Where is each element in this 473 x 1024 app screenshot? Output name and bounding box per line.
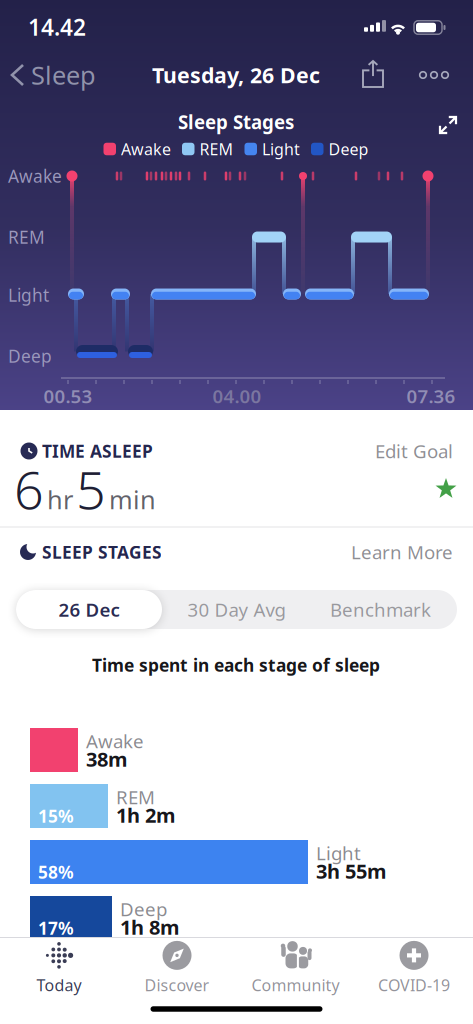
staticText: 30 Day Avg <box>187 597 285 622</box>
button[interactable]: Edit Goal <box>329 435 457 467</box>
staticText: Benchmark <box>330 597 431 622</box>
staticText: Sleep <box>31 58 96 92</box>
staticText: Deep <box>8 344 52 367</box>
staticText: Light <box>316 841 361 865</box>
staticText: Time spent in each stage of sleep <box>92 653 380 676</box>
staticText: Awake <box>8 164 62 187</box>
staticText: REM <box>199 138 233 160</box>
staticText: Awake <box>86 729 144 753</box>
button[interactable]: Back to Sleep <box>8 54 100 96</box>
button[interactable]: 26 Dec <box>16 590 162 629</box>
staticText: Deep <box>328 138 368 160</box>
staticText: 1h 2m <box>116 802 176 828</box>
staticText: 3h 55m <box>316 858 387 884</box>
staticText: hr <box>47 482 73 516</box>
button[interactable]: COVID-19 <box>362 940 466 996</box>
staticText: 04.00 <box>212 384 261 408</box>
button[interactable]: Learn More <box>329 536 457 568</box>
staticText: 07.36 <box>406 384 455 408</box>
staticText: REM <box>8 225 45 248</box>
staticText: 1h 8m <box>120 914 180 940</box>
staticText: COVID-19 <box>378 974 450 996</box>
staticText: Light <box>262 138 300 160</box>
staticText: TIME ASLEEP <box>42 439 153 462</box>
staticText: 38m <box>86 746 128 772</box>
button[interactable]: 30 Day Avg <box>166 590 306 629</box>
staticText: 58% <box>38 860 74 883</box>
button[interactable]: Expand chart <box>434 111 462 139</box>
staticText: Community <box>251 974 339 996</box>
staticText: REM <box>116 785 155 809</box>
staticText: Edit Goal <box>375 439 453 463</box>
staticText: Awake <box>121 138 171 160</box>
staticText: Tuesday, 26 Dec <box>152 61 320 89</box>
staticText: Deep <box>120 897 167 921</box>
button[interactable]: Today <box>7 940 111 996</box>
button[interactable]: Community <box>243 940 347 996</box>
staticText: 15% <box>38 804 74 827</box>
button[interactable]: Benchmark <box>310 590 450 629</box>
staticText: Today <box>36 974 81 996</box>
staticText: SLEEP STAGES <box>42 540 162 563</box>
staticText: Light <box>8 283 49 306</box>
staticText: 6 <box>14 454 44 524</box>
staticText: Discover <box>144 974 209 996</box>
staticText: 5 <box>76 454 106 524</box>
staticText: 26 Dec <box>58 597 119 622</box>
staticText: Learn More <box>351 540 453 564</box>
staticText: min <box>109 482 156 516</box>
staticText: Sleep Stages <box>178 110 294 134</box>
staticText: 14.42 <box>28 12 86 42</box>
button[interactable]: More options <box>412 64 456 86</box>
staticText: 17% <box>38 916 74 939</box>
button[interactable]: Discover <box>125 940 229 996</box>
staticText: 00.53 <box>43 384 92 408</box>
button[interactable]: Share <box>355 53 391 95</box>
